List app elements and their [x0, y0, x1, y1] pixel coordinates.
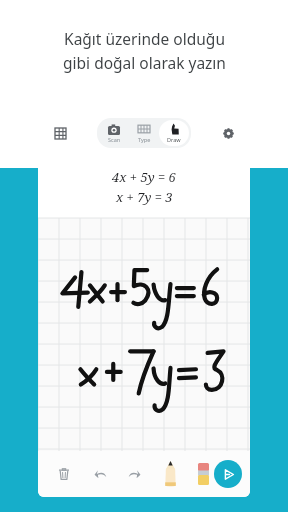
staticText: x + 7y = 3 — [116, 188, 173, 206]
button[interactable]: History — [44, 117, 76, 149]
button[interactable]: Settings — [212, 117, 244, 149]
staticText: 4x + 5y = 6 — [112, 168, 176, 186]
staticText: gibi doğal olarak yazın — [63, 52, 226, 73]
staticText: Draw — [167, 136, 181, 143]
button[interactable]: Redo — [120, 460, 148, 488]
staticText: Scan — [108, 136, 121, 143]
button[interactable]: Solve — [214, 460, 242, 488]
staticText: Kağıt üzerinde olduğu — [64, 28, 225, 49]
button[interactable]: Pencil — [155, 459, 185, 489]
button[interactable]: Scan — [99, 120, 129, 146]
staticText: Type — [138, 136, 151, 143]
button[interactable]: Undo — [86, 460, 114, 488]
button[interactable]: Draw — [159, 120, 189, 146]
button[interactable]: Delete — [50, 460, 78, 488]
button[interactable]: Type — [129, 120, 159, 146]
button[interactable]: Eraser — [188, 459, 218, 489]
